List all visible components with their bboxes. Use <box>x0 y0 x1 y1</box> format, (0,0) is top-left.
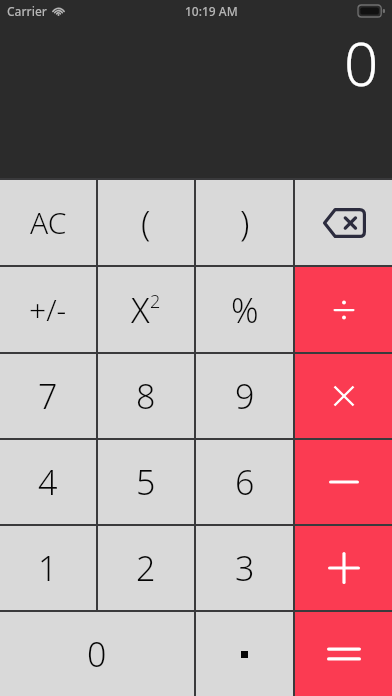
staticText: 0 <box>344 22 379 104</box>
staticText: 10:19 AM <box>185 3 238 19</box>
staticText: 7 <box>38 373 58 419</box>
button[interactable]: Decimal point <box>196 612 293 696</box>
staticText: 3 <box>235 545 255 591</box>
staticText: 6 <box>235 459 255 505</box>
staticText: Carrier <box>7 3 47 19</box>
staticText: AC <box>30 202 67 243</box>
button[interactable]: 2 <box>98 526 194 610</box>
button[interactable]: 3 <box>196 526 293 610</box>
button[interactable]: AC <box>0 180 96 265</box>
button[interactable]: 0 <box>0 612 194 696</box>
button[interactable]: ( <box>98 180 194 265</box>
button[interactable]: ) <box>196 180 293 265</box>
staticText: ( <box>141 200 151 246</box>
button[interactable]: 9 <box>196 354 293 438</box>
button[interactable]: Backspace <box>295 180 392 265</box>
staticText: ) <box>240 200 250 246</box>
staticText: 2 <box>150 289 161 314</box>
button[interactable]: % <box>196 267 293 352</box>
staticText: 1 <box>38 545 58 591</box>
button[interactable]: Multiply <box>295 354 392 438</box>
staticText: 0 <box>87 631 107 677</box>
button[interactable]: Plus <box>295 526 392 610</box>
staticText: 2 <box>136 545 156 591</box>
staticText: 5 <box>136 459 156 505</box>
button[interactable]: 1 <box>0 526 96 610</box>
button[interactable]: X squared <box>98 267 194 352</box>
staticText: X <box>131 287 150 333</box>
button[interactable]: 5 <box>98 440 194 524</box>
button[interactable]: 6 <box>196 440 293 524</box>
staticText: 9 <box>235 373 255 419</box>
staticText: 4 <box>38 459 58 505</box>
button[interactable]: Divide <box>295 267 392 352</box>
staticText: % <box>231 287 259 333</box>
button[interactable]: Equals <box>295 612 392 696</box>
button[interactable]: 4 <box>0 440 96 524</box>
button[interactable]: 7 <box>0 354 96 438</box>
button[interactable]: +/- <box>0 267 96 352</box>
staticText: 8 <box>136 373 156 419</box>
staticText: +/- <box>29 289 67 330</box>
button[interactable]: 8 <box>98 354 194 438</box>
button[interactable]: Minus <box>295 440 392 524</box>
